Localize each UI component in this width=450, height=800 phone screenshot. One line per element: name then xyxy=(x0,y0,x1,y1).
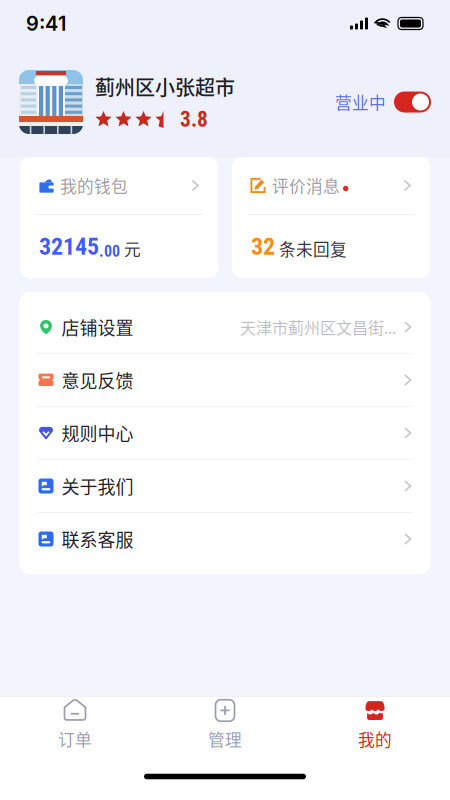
staticText: 营业中 xyxy=(335,90,386,114)
staticText: 我的钱包 xyxy=(60,173,128,197)
button[interactable]: 订单 xyxy=(0,697,150,753)
staticText: 32145 xyxy=(39,232,99,260)
staticText: 店铺设置 xyxy=(61,314,133,340)
button[interactable]: 规则中心 xyxy=(19,407,430,460)
staticText: 条未回复 xyxy=(275,236,347,260)
staticText: .00 xyxy=(99,242,120,261)
staticText: 关于我们 xyxy=(61,473,133,499)
staticText: 订单 xyxy=(58,727,92,751)
button[interactable]: 联系客服 xyxy=(19,513,430,565)
button[interactable]: 意见反馈 xyxy=(19,354,430,407)
button[interactable]: 店铺设置 xyxy=(19,301,430,354)
staticText: 我的 xyxy=(358,727,392,751)
staticText: 蓟州区小张超市 xyxy=(95,72,235,101)
button[interactable]: 我的钱包 xyxy=(20,157,218,278)
button[interactable]: 营业中 xyxy=(335,90,431,114)
staticText: 联系客服 xyxy=(61,526,133,552)
button[interactable]: 我的 xyxy=(300,697,450,753)
staticText: 9:41 xyxy=(26,11,66,36)
staticText: 意见反馈 xyxy=(61,367,133,393)
staticText: 规则中心 xyxy=(61,420,133,446)
staticText: 管理 xyxy=(208,727,242,751)
staticText: 元 xyxy=(120,236,141,260)
staticText: 评价消息 xyxy=(272,173,340,197)
staticText: 32 xyxy=(251,232,275,260)
staticText: 天津市蓟州区文昌街... xyxy=(240,315,396,339)
button[interactable]: 评价消息 xyxy=(232,157,430,278)
button[interactable]: 关于我们 xyxy=(19,460,430,513)
staticText: 3.8 xyxy=(175,107,208,132)
button[interactable]: 管理 xyxy=(150,697,300,753)
